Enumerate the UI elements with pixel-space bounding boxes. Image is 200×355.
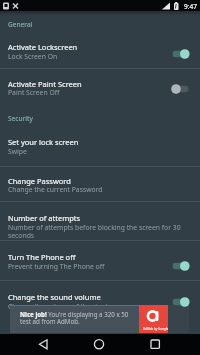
staticText: Turn The Phone off <box>8 252 76 262</box>
button[interactable] <box>0 127 200 166</box>
staticText: Change the sound volume <box>8 292 101 302</box>
button[interactable] <box>0 241 200 281</box>
button[interactable] <box>85 334 113 355</box>
button[interactable] <box>0 69 200 106</box>
staticText: Activate Paint Screen <box>8 79 82 89</box>
staticText: Prevent turning The Phone off <box>8 262 105 271</box>
button[interactable] <box>29 334 57 355</box>
staticText: Change Password <box>8 176 71 186</box>
staticText: Change the volume of the ringtone <box>8 302 121 311</box>
staticText: Security <box>8 114 33 123</box>
button[interactable] <box>141 334 169 355</box>
staticText: Activate Lockscreen <box>8 42 78 52</box>
staticText: Set your lock screen <box>8 137 79 147</box>
button[interactable]: Nice job! You're displaying a 320 x 50 t… <box>10 305 189 333</box>
button[interactable] <box>0 166 200 202</box>
staticText: Paint Screen Off <box>8 88 60 97</box>
staticText: Lock Screen On <box>8 52 58 61</box>
staticText: AdMob by Google <box>143 327 169 331</box>
staticText: Number of attempts before blocking the s… <box>8 223 190 240</box>
button[interactable] <box>0 202 200 241</box>
staticText: Swipe <box>8 147 27 156</box>
staticText: Nice job! You're displaying a 320 x 50 t… <box>20 310 138 326</box>
staticText: General <box>8 20 33 29</box>
staticText: 9:47 <box>184 2 197 11</box>
staticText: Change the current Password <box>8 185 103 194</box>
staticText: Number of attempts <box>8 213 81 223</box>
button[interactable] <box>0 281 200 305</box>
button[interactable] <box>0 32 200 69</box>
